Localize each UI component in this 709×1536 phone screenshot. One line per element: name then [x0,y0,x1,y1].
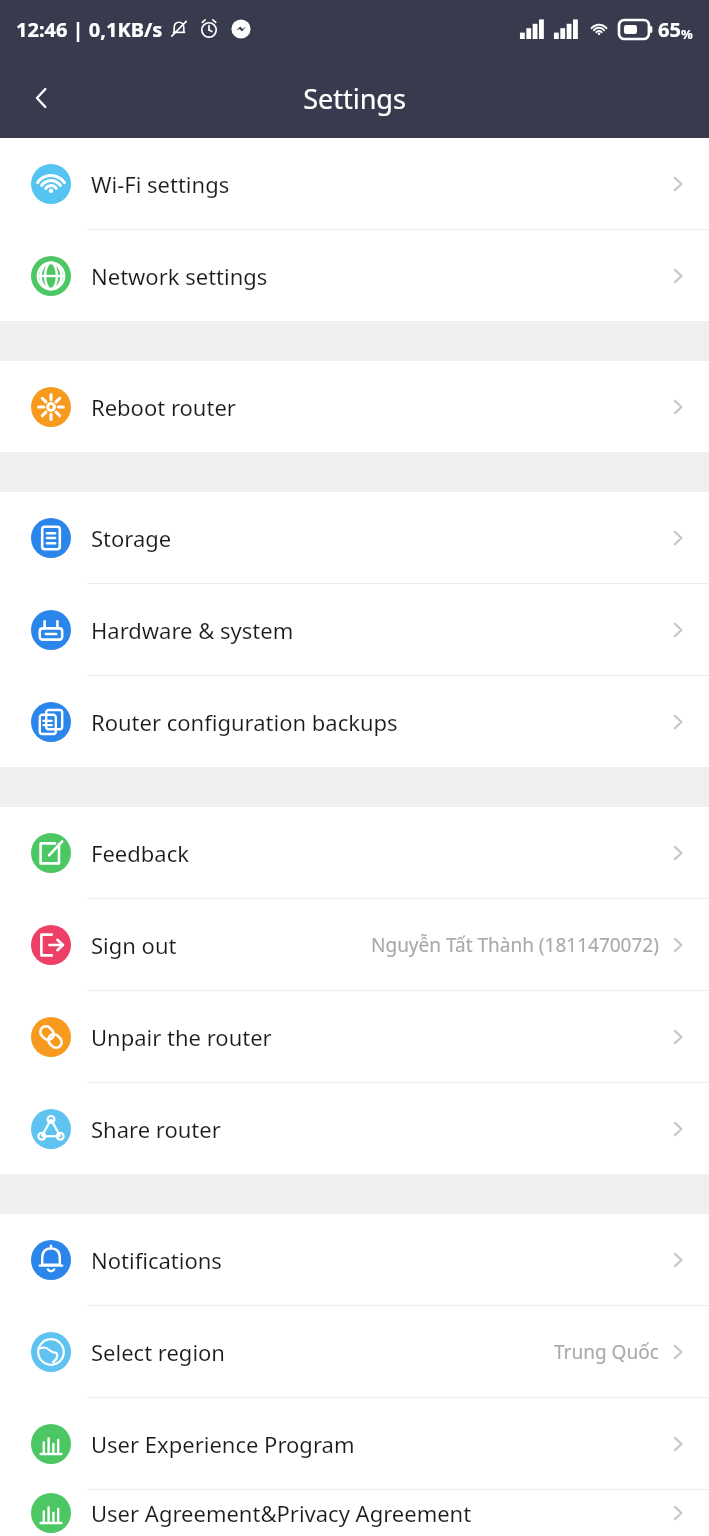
staticText: User Agreement&Privacy Agreement [91,1498,472,1528]
staticText: Share router [91,1114,221,1144]
button[interactable]: Share router [0,1083,709,1174]
staticText: % [681,25,693,43]
staticText: Feedback [91,838,189,868]
staticText: 12:46 | 0,1KB/s [16,16,163,43]
button[interactable]: User Agreement&Privacy Agreement [0,1490,709,1536]
staticText: Trung Quốc [554,1339,659,1365]
button[interactable]: Feedback [0,807,709,899]
staticText: Notifications [91,1245,222,1275]
button[interactable]: Hardware & system [0,584,709,676]
button[interactable]: Storage [0,492,709,584]
button[interactable]: Sign out [0,899,709,991]
staticText: Hardware & system [91,615,294,645]
button[interactable]: Back [14,70,70,126]
staticText: 65 [658,16,681,43]
button[interactable]: Wi-Fi settings [0,138,709,230]
button[interactable]: Network settings [0,230,709,321]
button[interactable]: Notifications [0,1214,709,1306]
button[interactable]: Reboot router [0,361,709,452]
staticText: Nguyễn Tất Thành (1811470072) [371,932,659,958]
staticText: Router configuration backups [91,707,398,737]
button[interactable]: User Experience Program [0,1398,709,1490]
staticText: Unpair the router [91,1022,272,1052]
staticText: Sign out [91,930,177,960]
staticText: Reboot router [91,392,236,422]
button[interactable]: Select region [0,1306,709,1398]
staticText: Network settings [91,261,268,291]
staticText: Settings [303,80,406,117]
staticText: Wi-Fi settings [91,169,230,199]
staticText: Storage [91,523,172,553]
staticText: Select region [91,1337,225,1367]
staticText: User Experience Program [91,1429,355,1459]
button[interactable]: Unpair the router [0,991,709,1083]
button[interactable]: Router configuration backups [0,676,709,767]
